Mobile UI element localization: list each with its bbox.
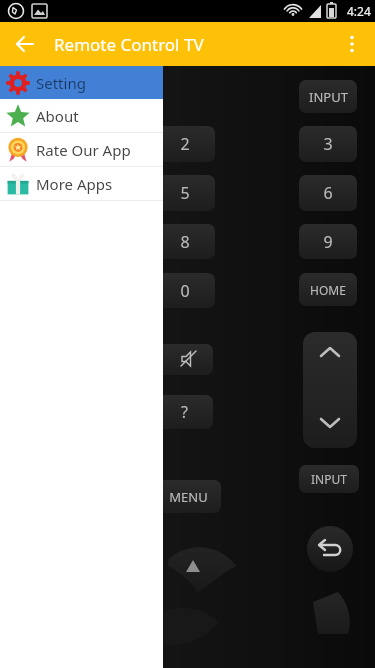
button[interactable]: INPUT — [299, 465, 359, 493]
staticText: Setting — [36, 73, 86, 93]
staticText: 6 — [323, 182, 333, 204]
staticText: More Apps — [36, 174, 113, 194]
staticText: 0 — [180, 280, 190, 302]
staticText: About — [36, 106, 79, 126]
staticText: 8 — [180, 231, 190, 253]
button[interactable]: 5 — [155, 175, 215, 211]
button[interactable]: More options — [333, 25, 371, 63]
button[interactable]: Mute — [155, 344, 213, 375]
staticText: 5 — [180, 182, 190, 204]
staticText: INPUT — [311, 471, 347, 487]
staticText: Remote Control TV — [54, 33, 204, 56]
button[interactable]: Channel up and down — [303, 332, 357, 448]
staticText: 3 — [323, 133, 333, 155]
staticText: INPUT — [309, 88, 348, 106]
staticText: MENU — [169, 488, 208, 506]
staticText: 9 — [323, 231, 333, 253]
staticText: Rate Our App — [36, 140, 131, 160]
button[interactable]: About — [0, 99, 163, 132]
staticText: ? — [181, 401, 188, 423]
button[interactable]: 0 — [155, 273, 215, 308]
staticText: HOME — [310, 282, 346, 298]
button[interactable]: Setting — [0, 66, 163, 99]
button[interactable]: 2 — [155, 126, 215, 162]
button[interactable]: Back — [8, 27, 42, 61]
button[interactable]: INPUT — [299, 80, 357, 113]
button[interactable]: 8 — [155, 224, 215, 259]
button[interactable]: Back — [307, 526, 353, 572]
button[interactable]: 6 — [299, 175, 357, 211]
button[interactable]: More Apps — [0, 167, 163, 200]
button[interactable]: 9 — [299, 224, 357, 259]
staticText: 4:24 — [347, 3, 371, 19]
button[interactable]: HOME — [299, 273, 357, 306]
button[interactable]: 3 — [299, 126, 357, 162]
button[interactable]: Rate Our App — [0, 133, 163, 166]
button[interactable]: ? — [155, 395, 213, 429]
staticText: 2 — [180, 133, 190, 155]
button[interactable]: MENU — [155, 480, 221, 513]
